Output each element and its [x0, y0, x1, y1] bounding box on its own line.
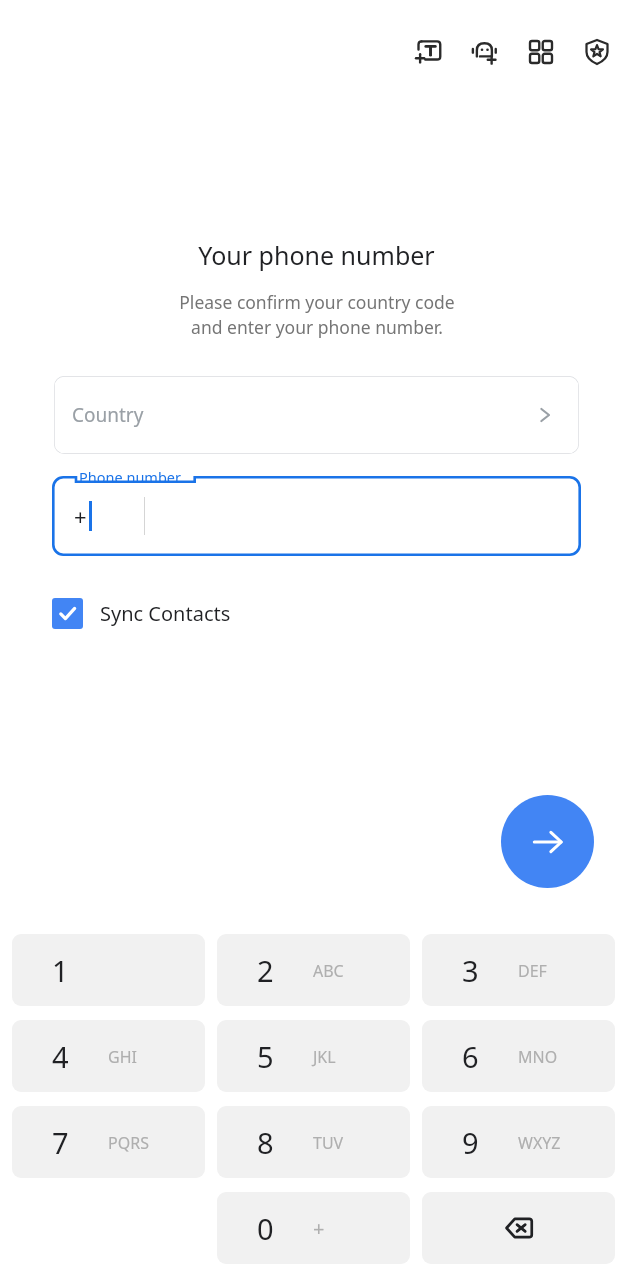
- button[interactable]: 4: [12, 1020, 205, 1092]
- staticText: Phone number: [79, 467, 181, 487]
- button[interactable]: Apps: [519, 30, 563, 74]
- staticText: 2: [257, 951, 274, 990]
- button[interactable]: 7: [12, 1106, 205, 1178]
- button[interactable]: 6: [422, 1020, 615, 1092]
- button[interactable]: 3: [422, 934, 615, 1006]
- staticText: ABC: [313, 960, 344, 982]
- button[interactable]: Phone number: [52, 476, 581, 556]
- staticText: 8: [257, 1123, 274, 1162]
- staticText: 4: [52, 1037, 69, 1076]
- button[interactable]: Country: [54, 376, 579, 454]
- staticText: Please confirm your country code and ent…: [179, 290, 455, 340]
- staticText: 1: [52, 951, 69, 990]
- button[interactable]: Add sticker: [463, 30, 507, 74]
- staticText: +: [313, 1215, 325, 1242]
- staticText: GHI: [108, 1046, 137, 1068]
- staticText: Country: [72, 402, 144, 428]
- button[interactable]: 8: [217, 1106, 410, 1178]
- staticText: 9: [462, 1123, 479, 1162]
- button[interactable]: Backspace: [422, 1192, 615, 1264]
- staticText: 5: [257, 1037, 274, 1076]
- staticText: MNO: [518, 1046, 558, 1068]
- button[interactable]: 1: [12, 934, 205, 1006]
- button[interactable]: Security: [575, 30, 619, 74]
- staticText: 0: [257, 1209, 274, 1248]
- button[interactable]: 2: [217, 934, 410, 1006]
- staticText: JKL: [313, 1046, 336, 1068]
- staticText: 6: [462, 1037, 479, 1076]
- button[interactable]: 5: [217, 1020, 410, 1092]
- staticText: 7: [52, 1123, 69, 1162]
- button[interactable]: 0: [217, 1192, 410, 1264]
- button[interactable]: Sync Contacts: [52, 598, 239, 629]
- button[interactable]: Add text: [407, 30, 451, 74]
- staticText: TUV: [313, 1132, 344, 1154]
- staticText: +: [74, 501, 87, 531]
- staticText: PQRS: [108, 1132, 149, 1154]
- button[interactable]: 9: [422, 1106, 615, 1178]
- staticText: 3: [462, 951, 479, 990]
- button[interactable]: Next: [501, 795, 594, 888]
- staticText: DEF: [518, 960, 547, 982]
- staticText: Sync Contacts: [100, 600, 231, 627]
- staticText: WXYZ: [518, 1132, 561, 1154]
- staticText: Your phone number: [198, 238, 435, 272]
